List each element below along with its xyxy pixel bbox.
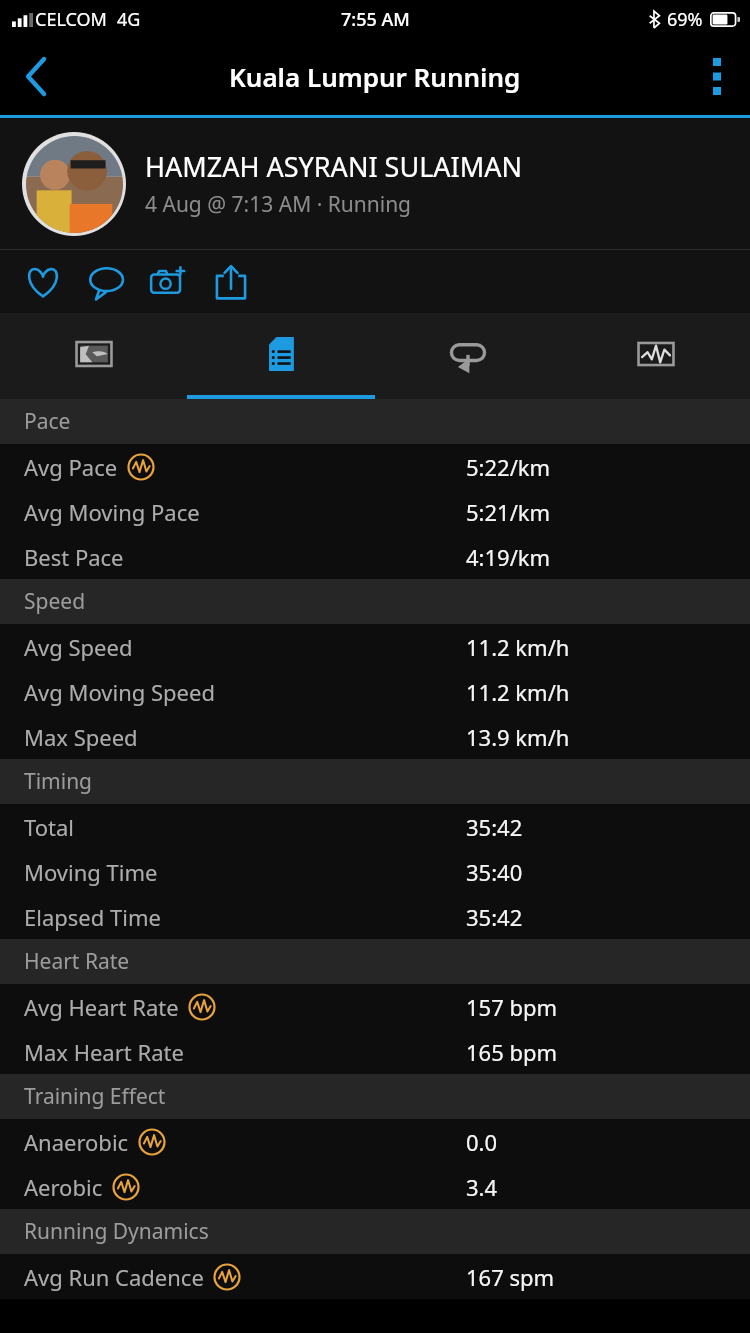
button[interactable]: Elapsed Time (0, 894, 750, 939)
button[interactable]: Anaerobic (0, 1119, 750, 1164)
button[interactable]: Max Speed (0, 714, 750, 759)
staticText: 35:40 (466, 857, 523, 887)
staticText: Elapsed Time (24, 902, 161, 932)
button[interactable]: Max Heart Rate (0, 1029, 750, 1074)
button[interactable]: More options (684, 38, 750, 115)
staticText: Pace (24, 407, 71, 436)
button[interactable]: Total (0, 804, 750, 849)
button[interactable]: Share (208, 259, 254, 305)
staticText: Avg Run Cadence (24, 1262, 204, 1292)
button[interactable]: Avg Moving Pace (0, 489, 750, 534)
button[interactable]: Avg Run Cadence (0, 1254, 750, 1299)
staticText: 3.4 (466, 1172, 498, 1202)
button[interactable]: Aerobic (0, 1164, 750, 1209)
staticText: Best Pace (24, 542, 124, 572)
button[interactable]: Avg Heart Rate (0, 984, 750, 1029)
staticText: Anaerobic (24, 1127, 129, 1157)
button[interactable]: Details (187, 313, 374, 395)
staticText: 35:42 (466, 812, 523, 842)
button[interactable]: Best Pace (0, 534, 750, 579)
staticText: Heart Rate (24, 947, 130, 976)
staticText: 165 bpm (466, 1037, 558, 1067)
staticText: 7:55 AM (341, 7, 410, 32)
button[interactable]: Charts (562, 313, 750, 395)
staticText: Training Effect (24, 1082, 166, 1111)
staticText: Max Heart Rate (24, 1037, 184, 1067)
button[interactable]: Back (0, 38, 72, 115)
staticText: Timing (24, 767, 93, 796)
button[interactable]: Like (20, 259, 66, 305)
staticText: 69% (667, 7, 703, 32)
staticText: 167 spm (466, 1262, 555, 1292)
button[interactable]: Laps (374, 313, 562, 395)
staticText: CELCOM (35, 7, 107, 32)
staticText: Avg Speed (24, 632, 133, 662)
staticText: Total (24, 812, 74, 842)
button[interactable]: Add photo (146, 259, 192, 305)
staticText: Avg Pace (24, 452, 118, 482)
button[interactable]: Comment (84, 259, 130, 305)
staticText: HAMZAH ASYRANI SULAIMAN (145, 148, 522, 185)
button[interactable]: Map (0, 313, 187, 395)
staticText: Speed (24, 587, 86, 616)
staticText: 13.9 km/h (466, 722, 570, 752)
staticText: 5:21/km (466, 497, 551, 527)
staticText: 0.0 (466, 1127, 498, 1157)
staticText: 35:42 (466, 902, 523, 932)
button[interactable]: Avg Moving Speed (0, 669, 750, 714)
staticText: Kuala Lumpur Running (229, 59, 521, 94)
button[interactable]: Moving Time (0, 849, 750, 894)
staticText: 11.2 km/h (466, 632, 570, 662)
staticText: 157 bpm (466, 992, 558, 1022)
button[interactable]: HAMZAH ASYRANI SULAIMAN (0, 118, 750, 249)
staticText: Avg Moving Speed (24, 677, 215, 707)
staticText: Avg Heart Rate (24, 992, 179, 1022)
staticText: Avg Moving Pace (24, 497, 200, 527)
staticText: 11.2 km/h (466, 677, 570, 707)
button[interactable]: Avg Speed (0, 624, 750, 669)
staticText: 4:19/km (466, 542, 551, 572)
staticText: Aerobic (24, 1172, 103, 1202)
staticText: 5:22/km (466, 452, 551, 482)
staticText: Running Dynamics (24, 1217, 209, 1246)
staticText: Moving Time (24, 857, 158, 887)
staticText: Max Speed (24, 722, 138, 752)
staticText: 4 Aug @ 7:13 AM · Running (145, 190, 412, 219)
button[interactable]: Avg Pace (0, 444, 750, 489)
staticText: 4G (117, 7, 141, 32)
